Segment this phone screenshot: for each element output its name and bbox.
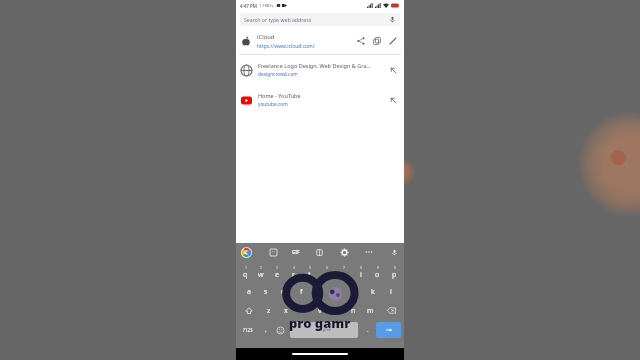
staticText: o <box>375 270 380 280</box>
button[interactable]: 9 <box>369 263 386 282</box>
button[interactable]: Voice input <box>388 246 400 258</box>
button[interactable]: z <box>260 301 277 320</box>
button[interactable]: Share <box>355 35 367 47</box>
button[interactable]: Fill query <box>387 64 399 76</box>
button[interactable]: 3 <box>269 263 285 282</box>
staticText: b <box>334 306 339 316</box>
staticText: h <box>335 287 340 297</box>
staticText: 9 <box>377 265 379 270</box>
button[interactable]: English <box>290 322 358 338</box>
staticText: v <box>318 306 322 316</box>
staticText: 5 <box>309 265 311 270</box>
staticText: Search or type web address <box>244 16 312 23</box>
staticText: d <box>281 287 286 297</box>
button[interactable]: 7 <box>335 263 352 282</box>
staticText: , <box>265 326 267 334</box>
staticText: r <box>292 270 295 280</box>
staticText: c <box>301 306 305 316</box>
staticText: l <box>390 287 392 297</box>
staticText: Home - YouTube <box>258 92 301 99</box>
staticText: a <box>247 287 251 297</box>
staticText: GIF <box>292 249 300 255</box>
button[interactable]: Fill query <box>387 94 399 106</box>
button[interactable]: c <box>294 301 311 320</box>
staticText: iCloud <box>257 33 275 41</box>
button[interactable]: g <box>310 282 328 301</box>
button[interactable]: Clipboard <box>313 246 325 258</box>
button[interactable]: Backspace <box>379 301 403 320</box>
button[interactable]: iCloud <box>236 28 404 54</box>
button[interactable]: d <box>274 282 292 301</box>
staticText: 8 <box>360 265 362 270</box>
button[interactable]: h <box>328 282 346 301</box>
button[interactable]: Shift <box>237 301 260 320</box>
staticText: https://www.icloud.com/ <box>257 43 315 50</box>
staticText: 7 <box>343 265 345 270</box>
button[interactable]: Home - YouTube <box>236 85 404 115</box>
staticText: 3 <box>276 265 278 270</box>
staticText: q <box>243 270 248 280</box>
button[interactable]: 6 <box>318 263 335 282</box>
button[interactable]: Search or type web address <box>240 13 400 26</box>
button[interactable]: 2 <box>253 263 269 282</box>
button[interactable]: j <box>346 282 364 301</box>
button[interactable]: , <box>258 322 273 338</box>
staticText: 4 <box>293 265 295 270</box>
button[interactable]: Stickers <box>267 246 279 258</box>
button[interactable]: 1 <box>237 263 253 282</box>
staticText: t <box>308 270 311 280</box>
button[interactable]: Freelance Logo Design, Web Design & Gra… <box>236 55 404 85</box>
button[interactable]: Settings <box>338 246 350 258</box>
button[interactable]: Edit <box>387 35 399 47</box>
button[interactable]: 0 <box>386 263 403 282</box>
staticText: w <box>258 270 264 280</box>
button[interactable]: 4 <box>285 263 301 282</box>
staticText: designcrowd.com <box>258 71 298 78</box>
button[interactable]: m <box>362 301 379 320</box>
button[interactable]: More options <box>363 246 375 258</box>
staticText: f <box>300 287 303 297</box>
button[interactable]: x <box>277 301 294 320</box>
staticText: 1 <box>245 265 247 270</box>
button[interactable]: 8 <box>352 263 369 282</box>
staticText: ?123 <box>243 327 253 333</box>
button[interactable]: k <box>364 282 382 301</box>
button[interactable]: f <box>292 282 310 301</box>
staticText: pro gamr <box>289 314 351 332</box>
button[interactable]: s <box>257 282 274 301</box>
button[interactable]: ?123 <box>238 322 258 338</box>
staticText: 1.1KB/s <box>259 3 274 8</box>
staticText: p <box>392 270 397 280</box>
button[interactable]: Copy <box>371 35 383 47</box>
button[interactable]: . <box>360 322 375 338</box>
button[interactable]: Google <box>240 246 253 259</box>
staticText: y <box>325 270 329 280</box>
staticText: u <box>341 270 346 280</box>
button[interactable]: Enter <box>376 322 401 338</box>
staticText: Freelance Logo Design, Web Design & Gra… <box>258 62 371 69</box>
staticText: k <box>371 287 375 297</box>
staticText: n <box>351 306 356 316</box>
staticText: e <box>275 270 279 280</box>
staticText: 2 <box>260 265 262 270</box>
staticText: 4:47 PM <box>240 3 257 9</box>
button[interactable]: l <box>382 282 400 301</box>
button[interactable]: Emoji <box>273 322 288 338</box>
staticText: z <box>267 306 271 316</box>
staticText: s <box>264 287 268 297</box>
staticText: 0 <box>394 265 396 270</box>
button[interactable]: n <box>345 301 362 320</box>
staticText: English <box>317 327 332 333</box>
staticText: . <box>367 326 369 334</box>
button[interactable]: GIF <box>292 246 300 258</box>
staticText: 6 <box>326 265 328 270</box>
button[interactable]: b <box>328 301 345 320</box>
staticText: m <box>367 306 374 316</box>
button[interactable]: 5 <box>301 263 318 282</box>
staticText: youtube.com <box>258 101 288 108</box>
button[interactable]: v <box>311 301 328 320</box>
staticText: i <box>360 270 362 280</box>
button[interactable]: a <box>240 282 257 301</box>
